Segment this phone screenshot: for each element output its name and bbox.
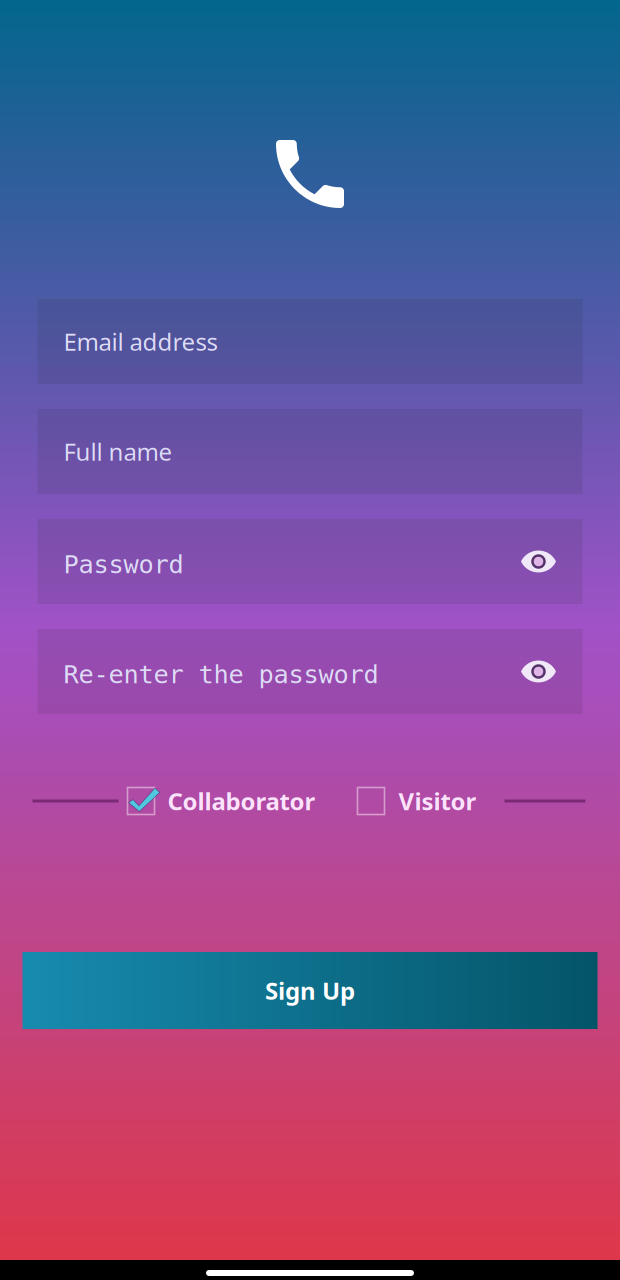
staticText: Re-enter the password <box>63 660 378 689</box>
button[interactable]: Show password <box>512 535 564 587</box>
staticText: Sign Up <box>265 975 355 1006</box>
staticText: Email address <box>63 326 217 357</box>
button[interactable]: Show password <box>512 645 564 697</box>
button[interactable]: Collaborator <box>127 785 315 817</box>
staticText: Password <box>63 550 183 579</box>
staticText: Collaborator <box>167 785 315 817</box>
button[interactable]: Visitor <box>357 785 476 817</box>
button[interactable]: Sign Up <box>22 952 597 1029</box>
staticText: Full name <box>63 436 172 467</box>
staticText: Visitor <box>398 785 476 817</box>
